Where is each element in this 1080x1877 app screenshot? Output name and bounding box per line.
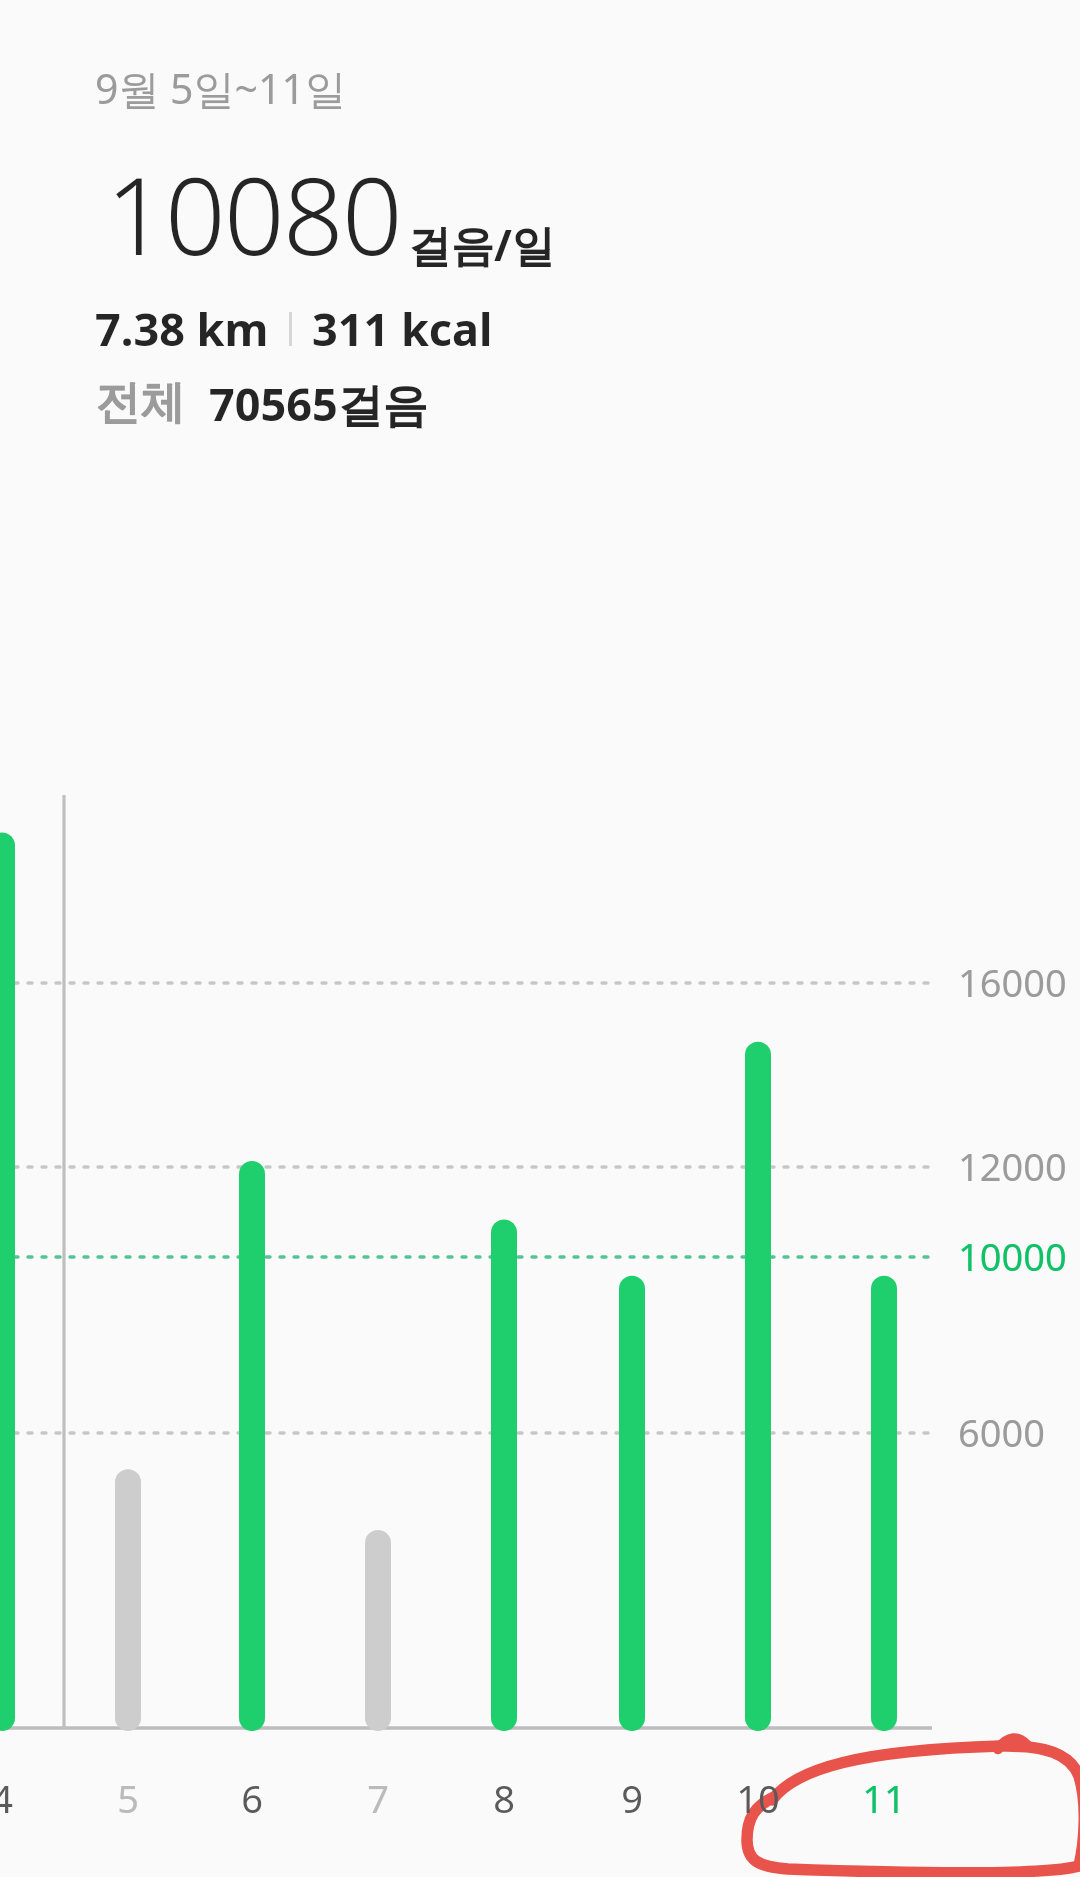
button[interactable]: Weekly step chart [0, 0, 1080, 1877]
staticText: 5 [83, 1772, 173, 1824]
staticText: 걸음/일 [408, 215, 555, 274]
staticText: 7 [333, 1772, 423, 1824]
staticText: 전체 [95, 375, 185, 432]
staticText: 12000 [958, 1140, 1067, 1192]
staticText: 10 [713, 1772, 803, 1824]
staticText: 70565걸음 [209, 373, 428, 434]
staticText: 10000 [958, 1230, 1067, 1282]
staticText: 4 [0, 1772, 47, 1824]
staticText: 9 [587, 1772, 677, 1824]
staticText: 311 kcal [312, 298, 493, 359]
staticText: 6 [207, 1772, 297, 1824]
staticText: 11 [839, 1772, 929, 1824]
staticText: 8 [459, 1772, 549, 1824]
staticText: 6000 [958, 1406, 1045, 1458]
staticText: 10080 [106, 142, 402, 286]
staticText: 16000 [958, 956, 1067, 1008]
staticText: 7.38 km [95, 298, 269, 359]
staticText: 9월 5일~11일 [95, 60, 346, 116]
